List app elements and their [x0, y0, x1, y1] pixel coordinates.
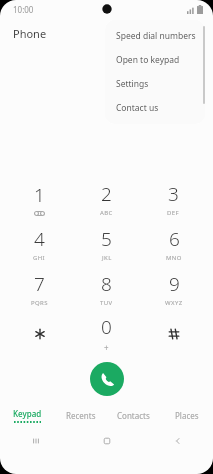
button[interactable]: 6: [140, 221, 207, 266]
staticText: MNO: [166, 254, 182, 262]
button[interactable]: Places: [160, 402, 213, 428]
staticText: Phone: [13, 26, 47, 41]
button[interactable]: Back: [142, 428, 213, 454]
button[interactable]: 1: [6, 176, 73, 221]
staticText: JKL: [102, 254, 112, 262]
button[interactable]: [6, 311, 73, 356]
staticText: Open to keypad: [116, 54, 180, 66]
button[interactable]: 0: [73, 311, 140, 356]
button[interactable]: 7: [6, 266, 73, 311]
staticText: 4: [34, 226, 45, 252]
staticText: Speed dial numbers: [116, 30, 196, 42]
staticText: WXYZ: [165, 299, 183, 307]
staticText: 3: [168, 181, 179, 207]
button[interactable]: [140, 311, 207, 356]
staticText: ABC: [100, 209, 113, 217]
staticText: TUV: [100, 299, 113, 307]
button[interactable]: Open to keypad: [105, 48, 205, 72]
staticText: 5: [101, 226, 112, 252]
staticText: Places: [175, 410, 199, 421]
staticText: Contacts: [117, 410, 150, 421]
staticText: PQRS: [31, 299, 48, 307]
button[interactable]: 2: [73, 176, 140, 221]
staticText: Contact us: [116, 102, 159, 114]
button[interactable]: Contact us: [105, 96, 205, 120]
button[interactable]: Call: [90, 362, 124, 396]
staticText: 7: [34, 271, 45, 297]
button[interactable]: Contacts: [107, 402, 160, 428]
button[interactable]: Home: [71, 428, 142, 454]
staticText: 10:00: [13, 4, 34, 15]
staticText: Keypad: [13, 408, 42, 419]
button[interactable]: 4: [6, 221, 73, 266]
staticText: Settings: [116, 78, 149, 90]
button[interactable]: Recents: [0, 428, 71, 454]
button[interactable]: Speed dial numbers: [105, 24, 205, 48]
staticText: 9: [169, 271, 180, 297]
staticText: GHI: [33, 254, 46, 262]
button[interactable]: Keypad: [0, 402, 54, 428]
staticText: 1: [34, 182, 45, 208]
button[interactable]: 3: [140, 176, 207, 221]
button[interactable]: Settings: [105, 72, 205, 96]
staticText: 8: [101, 271, 112, 297]
staticText: 6: [169, 226, 180, 252]
staticText: 0: [101, 314, 112, 340]
staticText: 2: [101, 181, 112, 207]
staticText: Recents: [66, 410, 96, 421]
button[interactable]: Recents: [54, 402, 107, 428]
staticText: +: [104, 342, 109, 353]
button[interactable]: 9: [140, 266, 207, 311]
button[interactable]: 8: [73, 266, 140, 311]
staticText: DEF: [167, 209, 180, 217]
button[interactable]: 5: [73, 221, 140, 266]
